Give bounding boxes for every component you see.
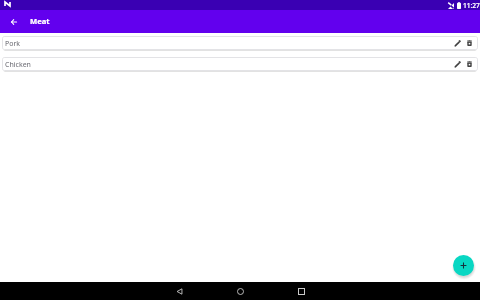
button[interactable]: Edit	[451, 37, 463, 49]
button[interactable]: Home	[225, 282, 255, 300]
button[interactable]: Back	[164, 282, 194, 300]
button[interactable]: Delete	[463, 58, 475, 70]
staticText: 11:27	[463, 1, 480, 10]
staticText: Pork	[5, 39, 21, 49]
button[interactable]: Edit	[451, 58, 463, 70]
staticText: Meat	[30, 16, 50, 26]
button[interactable]: Delete	[463, 37, 475, 49]
button[interactable]: Back	[4, 12, 23, 31]
button[interactable]: Chicken	[2, 57, 478, 71]
staticText: Chicken	[5, 60, 31, 70]
button[interactable]: Pork	[2, 36, 478, 50]
button[interactable]: Recents	[286, 282, 316, 300]
button[interactable]: Add	[453, 255, 474, 276]
